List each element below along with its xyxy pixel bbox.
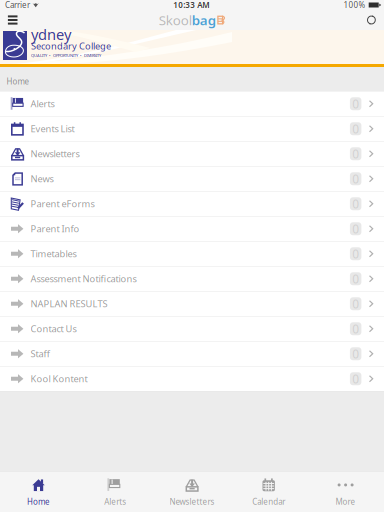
button[interactable]: NAPLAN RESULTS bbox=[0, 291, 384, 316]
staticText: Contact Us bbox=[30, 323, 76, 335]
button[interactable]: Alerts bbox=[77, 472, 154, 512]
staticText: Skool bbox=[159, 11, 192, 29]
staticText: Parent eForms bbox=[30, 198, 94, 210]
button[interactable]: Staff bbox=[0, 341, 384, 366]
staticText: 100% bbox=[343, 0, 365, 10]
staticText: Parent Info bbox=[30, 223, 79, 235]
staticText: bag bbox=[192, 11, 216, 29]
button[interactable]: Menu bbox=[0, 10, 25, 30]
button[interactable]: Parent eForms bbox=[0, 191, 384, 216]
staticText: Secondary College bbox=[31, 40, 111, 52]
staticText: 0 bbox=[352, 296, 359, 312]
staticText: 0 bbox=[352, 196, 359, 212]
button[interactable]: Contact Us bbox=[0, 316, 384, 341]
staticText: Events List bbox=[30, 123, 74, 135]
staticText: Assessment Notifications bbox=[30, 273, 136, 285]
staticText: Newsletters bbox=[169, 496, 214, 507]
button[interactable]: Newsletters bbox=[154, 472, 230, 512]
staticText: Carrier bbox=[5, 0, 30, 10]
button[interactable]: Refresh bbox=[359, 10, 384, 30]
button[interactable]: Parent Info bbox=[0, 216, 384, 241]
staticText: 0 bbox=[352, 146, 359, 162]
staticText: ydney bbox=[31, 24, 71, 44]
staticText: QUALITY • OPPORTUNITY • DIVERSITY bbox=[31, 53, 101, 58]
staticText: Newsletters bbox=[30, 148, 79, 160]
staticText: Calendar bbox=[252, 496, 285, 507]
button[interactable]: Newsletters bbox=[0, 141, 384, 166]
staticText: 0 bbox=[352, 221, 359, 237]
staticText: More bbox=[336, 496, 356, 507]
staticText: 10:33 AM bbox=[173, 0, 209, 10]
staticText: Home bbox=[6, 76, 29, 87]
button[interactable]: Timetables bbox=[0, 241, 384, 266]
button[interactable]: Assessment Notifications bbox=[0, 266, 384, 291]
staticText: NAPLAN RESULTS bbox=[30, 298, 107, 310]
staticText: 0 bbox=[352, 321, 359, 337]
staticText: Kool Kontent bbox=[30, 373, 87, 385]
staticText: 0 bbox=[352, 246, 359, 262]
staticText: Alerts bbox=[104, 496, 126, 507]
button[interactable]: Events List bbox=[0, 116, 384, 141]
button[interactable]: Kool Kontent bbox=[0, 366, 384, 391]
staticText: News bbox=[30, 173, 53, 185]
staticText: Alerts bbox=[30, 98, 54, 110]
staticText: 0 bbox=[352, 121, 359, 137]
button[interactable]: News bbox=[0, 166, 384, 191]
button[interactable]: Calendar bbox=[230, 472, 307, 512]
staticText: 0 bbox=[352, 271, 359, 287]
staticText: Staff bbox=[30, 348, 49, 360]
staticText: 0 bbox=[352, 96, 359, 112]
button[interactable]: Alerts bbox=[0, 91, 384, 116]
button[interactable]: Home bbox=[0, 472, 77, 512]
staticText: Timetables bbox=[30, 248, 76, 260]
staticText: 0 bbox=[352, 346, 359, 362]
staticText: 0 bbox=[352, 371, 359, 387]
staticText: 0 bbox=[352, 171, 359, 187]
button[interactable]: More bbox=[307, 472, 384, 512]
staticText: Home bbox=[27, 496, 50, 507]
